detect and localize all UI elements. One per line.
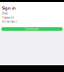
staticText: Remember [2, 20, 17, 23]
staticText: Email [2, 12, 8, 15]
button[interactable]: Continue [1, 27, 62, 31]
staticText: Continue [25, 27, 39, 31]
staticText: Password [2, 16, 14, 19]
staticText: Sign in [2, 5, 16, 10]
